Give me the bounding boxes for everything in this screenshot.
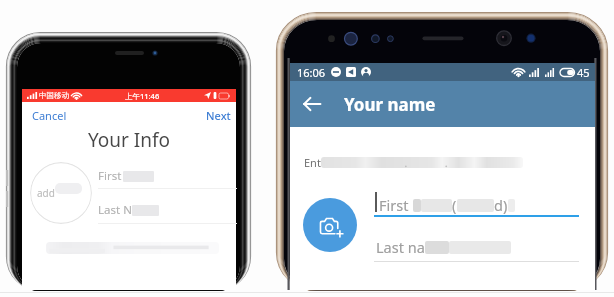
staticText: add — [37, 186, 55, 200]
staticText: First — [98, 168, 122, 184]
button[interactable]: Add photo — [303, 198, 357, 252]
staticText: First — [379, 195, 413, 215]
staticText: Ent — [304, 155, 321, 170]
button[interactable]: Add profile picture — [30, 162, 92, 224]
staticText: 上午11:46 — [125, 91, 160, 101]
staticText: 45 — [577, 65, 590, 80]
staticText: Your Info — [88, 127, 171, 151]
button[interactable]: Back — [297, 89, 327, 119]
staticText: Last N — [98, 202, 132, 218]
staticText: ( — [452, 195, 457, 215]
staticText: Cancel — [32, 108, 67, 123]
staticText: 16:06 — [297, 65, 326, 80]
staticText: Next — [206, 108, 231, 123]
staticText: d) — [494, 195, 508, 215]
staticText: Your name — [344, 93, 436, 116]
button[interactable]: Next — [200, 103, 237, 128]
staticText: Last na — [376, 237, 425, 257]
staticText: 中国移动 — [39, 91, 69, 100]
button[interactable]: Cancel — [26, 103, 73, 128]
